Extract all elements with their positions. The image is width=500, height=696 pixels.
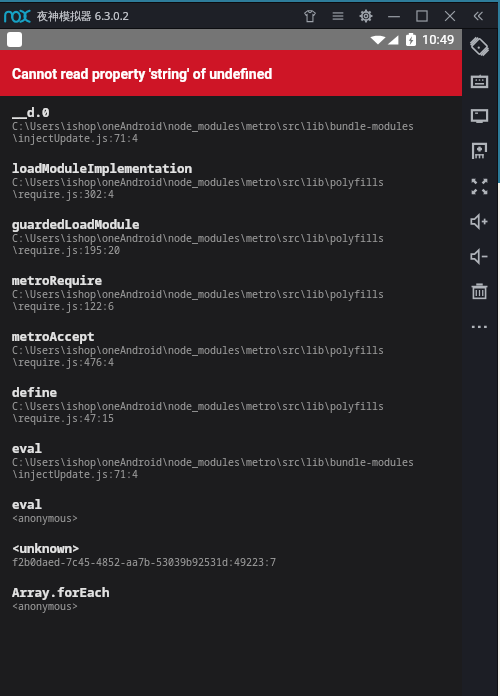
button[interactable]: define	[0, 376, 462, 432]
button[interactable]: Fullscreen	[462, 169, 497, 204]
staticText: C:\Users\ishop\oneAndroid\node_modules\m…	[12, 231, 384, 245]
button[interactable]: Cannot read property 'string' of undefin…	[0, 50, 462, 96]
button[interactable]: More options	[462, 309, 497, 344]
staticText: \injectUpdate.js:71:4	[12, 467, 138, 481]
staticText: eval	[12, 440, 43, 457]
staticText: \injectUpdate.js:71:4	[12, 131, 138, 145]
staticText: C:\Users\ishop\oneAndroid\node_modules\m…	[12, 119, 414, 133]
staticText: \require.js:476:4	[12, 355, 114, 369]
staticText: <unknown>	[12, 540, 80, 557]
button[interactable]: metroAccept	[0, 320, 462, 376]
button[interactable]: Volume up	[462, 204, 497, 239]
staticText: <anonymous>	[12, 511, 78, 525]
staticText: 夜神模拟器 6.3.0.2	[37, 8, 129, 23]
button[interactable]: Menu	[324, 3, 352, 28]
button[interactable]: loadModuleImplementation	[0, 152, 462, 208]
button[interactable]: Maximize	[408, 3, 436, 28]
staticText: Cannot read property 'string' of undefin…	[12, 66, 273, 82]
button[interactable]: Keyboard	[462, 64, 497, 99]
staticText: loadModuleImplementation	[12, 160, 193, 177]
staticText: metroRequire	[12, 272, 103, 289]
staticText: C:\Users\ishop\oneAndroid\node_modules\m…	[12, 399, 384, 413]
staticText: \require.js:302:4	[12, 187, 114, 201]
button[interactable]: <unknown>	[0, 532, 462, 576]
button[interactable]: eval	[0, 488, 462, 532]
staticText: metroAccept	[12, 328, 95, 345]
staticText: __d.0	[12, 104, 50, 121]
button[interactable]: Volume down	[462, 239, 497, 274]
staticText: \require.js:195:20	[12, 243, 120, 257]
staticText: Array.forEach	[12, 584, 110, 601]
staticText: C:\Users\ishop\oneAndroid\node_modules\m…	[12, 343, 384, 357]
staticText: f2b0daed-7c45-4852-aa7b-53039b92531d:492…	[12, 555, 276, 569]
button[interactable]: Settings	[352, 3, 380, 28]
staticText: C:\Users\ishop\oneAndroid\node_modules\m…	[12, 175, 384, 189]
staticText: C:\Users\ishop\oneAndroid\node_modules\m…	[12, 287, 384, 301]
button[interactable]: guardedLoadModule	[0, 208, 462, 264]
staticText: eval	[12, 496, 43, 513]
staticText: guardedLoadModule	[12, 216, 140, 233]
button[interactable]: Delete	[462, 274, 497, 309]
button[interactable]: metroRequire	[0, 264, 462, 320]
button[interactable]: Collapse toolbar	[464, 3, 492, 28]
button[interactable]: Array.forEach	[0, 576, 462, 620]
button[interactable]: __d.0	[0, 96, 462, 152]
button[interactable]: Themes	[296, 3, 324, 28]
button[interactable]: eval	[0, 432, 462, 488]
staticText: 10:49	[422, 32, 455, 47]
staticText: <anonymous>	[12, 599, 78, 613]
button[interactable]: Screenshot	[462, 99, 497, 134]
button[interactable]: Close	[436, 3, 464, 28]
staticText: \require.js:47:15	[12, 411, 114, 425]
button[interactable]: Install APK	[462, 134, 497, 169]
staticText: \require.js:122:6	[12, 299, 114, 313]
button[interactable]: Rotate screen	[462, 29, 497, 64]
button[interactable]: Minimize	[380, 3, 408, 28]
staticText: C:\Users\ishop\oneAndroid\node_modules\m…	[12, 455, 414, 469]
staticText: define	[12, 384, 58, 401]
